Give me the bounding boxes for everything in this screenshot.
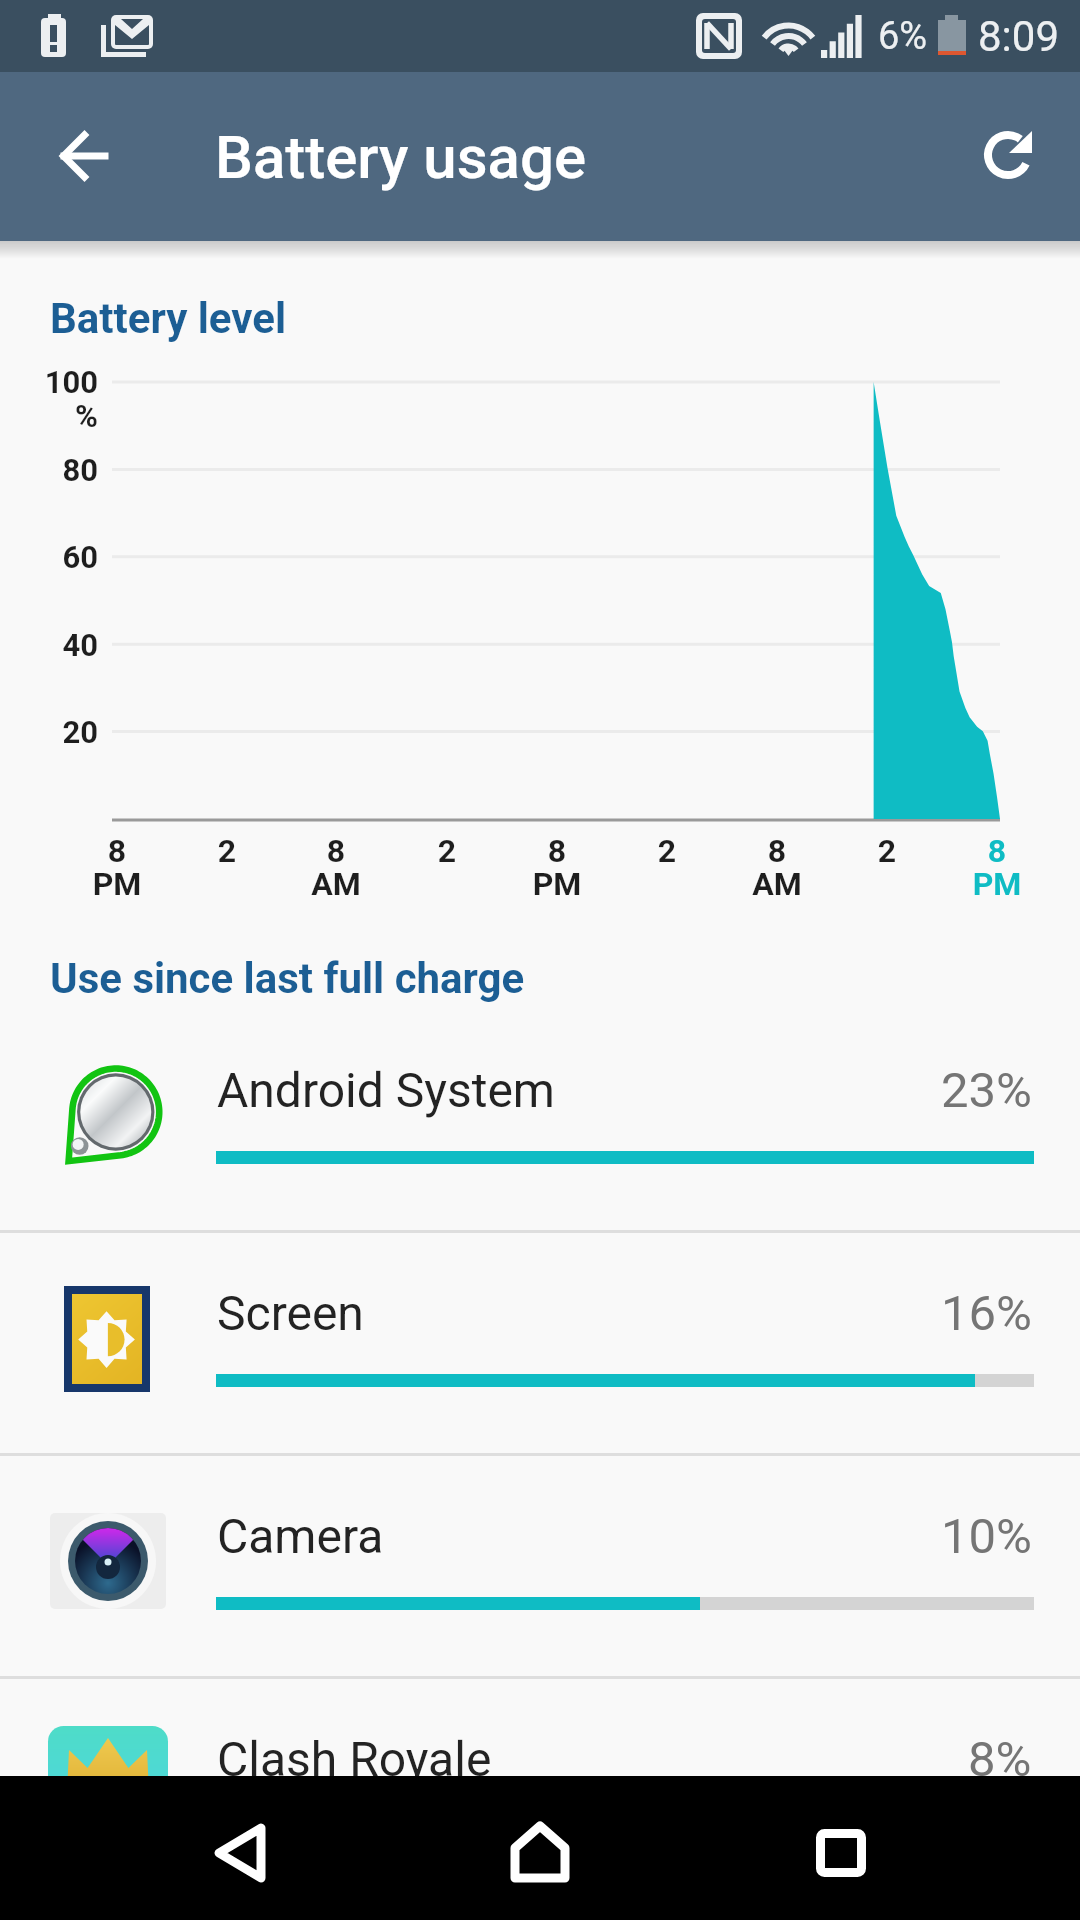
button[interactable]: Back bbox=[180, 1793, 300, 1913]
staticText: Camera bbox=[217, 1508, 384, 1564]
staticText: 2 bbox=[167, 832, 287, 870]
button[interactable]: Home bbox=[480, 1793, 600, 1913]
staticText: 23% bbox=[941, 1062, 1032, 1119]
staticText: 2 bbox=[387, 832, 507, 870]
staticText: 8 PM bbox=[497, 832, 617, 903]
button[interactable]: Clash Royale bbox=[0, 1676, 1080, 1899]
staticText: Clash Royale bbox=[217, 1731, 492, 1787]
staticText: Use since last full charge bbox=[50, 954, 525, 1003]
staticText: 8 AM bbox=[717, 832, 837, 903]
staticText: Android System bbox=[217, 1062, 555, 1118]
staticText: 6% bbox=[878, 14, 928, 59]
staticText: 8 PM bbox=[57, 832, 177, 903]
button[interactable]: Screen bbox=[0, 1230, 1080, 1453]
button[interactable]: Recent apps bbox=[781, 1793, 901, 1913]
button[interactable]: Android System bbox=[0, 1007, 1080, 1230]
staticText: 8:09 bbox=[978, 12, 1059, 61]
staticText: Screen bbox=[217, 1285, 364, 1341]
staticText: 8 PM bbox=[937, 832, 1057, 903]
button[interactable]: Navigate up bbox=[36, 108, 132, 204]
staticText: 8 AM bbox=[276, 832, 396, 903]
staticText: 8% bbox=[968, 1731, 1032, 1788]
button[interactable]: Camera bbox=[0, 1453, 1080, 1676]
staticText: 10% bbox=[941, 1508, 1032, 1565]
staticText: 60 bbox=[0, 539, 98, 575]
staticText: 16% bbox=[941, 1285, 1032, 1342]
button[interactable]: Refresh bbox=[960, 107, 1056, 203]
staticText: 2 bbox=[827, 832, 947, 870]
staticText: Battery level bbox=[50, 294, 287, 343]
staticText: % bbox=[0, 398, 98, 434]
staticText: Battery usage bbox=[215, 122, 587, 192]
staticText: 2 bbox=[607, 832, 727, 870]
staticText: 40 bbox=[0, 627, 98, 663]
staticText: 20 bbox=[0, 714, 98, 750]
staticText: 100 bbox=[0, 364, 98, 400]
staticText: 80 bbox=[0, 452, 98, 488]
